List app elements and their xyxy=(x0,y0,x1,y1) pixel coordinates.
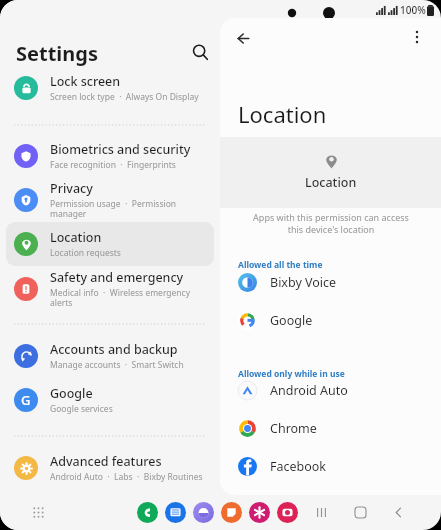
staticText: Apps with this permission can access thi… xyxy=(253,211,409,235)
staticText: Location xyxy=(305,174,357,191)
staticText: Safety and emergency xyxy=(50,269,184,286)
staticText: Location requests xyxy=(50,247,121,259)
button[interactable]: phone xyxy=(137,502,158,523)
staticText: Android Auto xyxy=(270,382,348,399)
button[interactable]: Accounts and backup xyxy=(6,334,214,378)
button[interactable]: Chrome xyxy=(220,412,441,444)
staticText: Face recognition · Fingerprints xyxy=(50,159,176,171)
button[interactable]: Back xyxy=(228,23,258,53)
staticText: Screen lock type · Always On Display xyxy=(50,91,199,103)
button[interactable]: Lock screen xyxy=(6,66,214,110)
staticText: Manage accounts · Smart Switch xyxy=(50,359,184,371)
staticText: Google xyxy=(50,385,93,402)
staticText: Medical info · Wireless emergency alerts xyxy=(50,287,214,309)
staticText: Google services xyxy=(50,403,113,415)
staticText: Accounts and backup xyxy=(50,341,178,358)
staticText: 100% xyxy=(400,3,426,17)
button[interactable]: Android Auto xyxy=(220,374,441,406)
button[interactable]: notes xyxy=(221,502,242,523)
staticText: Android Auto · Labs · Bixby Routines xyxy=(50,471,203,483)
button[interactable]: Home xyxy=(348,500,372,524)
button[interactable]: Privacy xyxy=(6,178,214,222)
staticText: Bixby Voice xyxy=(270,274,337,291)
staticText: G xyxy=(21,391,31,409)
staticText: Permission usage · Permission manager xyxy=(50,198,214,220)
staticText: Google xyxy=(270,312,313,329)
button[interactable]: Bixby Voice xyxy=(220,266,441,298)
staticText: Location xyxy=(50,229,102,246)
staticText: Biometrics and security xyxy=(50,141,191,158)
staticText: Lock screen xyxy=(50,73,121,90)
button[interactable]: msg xyxy=(165,502,186,523)
button[interactable]: G xyxy=(6,378,214,422)
button[interactable]: Google xyxy=(220,304,441,336)
button[interactable]: Search xyxy=(186,38,214,66)
button[interactable]: Facebook xyxy=(220,450,441,482)
staticText: Allowed all the time xyxy=(238,259,323,271)
staticText: Location xyxy=(238,99,327,129)
button[interactable]: Back xyxy=(386,500,410,524)
button[interactable]: cam xyxy=(277,502,298,523)
staticText: Privacy xyxy=(50,180,93,197)
staticText: Chrome xyxy=(270,420,317,437)
button[interactable]: flower xyxy=(249,502,270,523)
staticText: Settings xyxy=(16,40,98,67)
staticText: Advanced features xyxy=(50,453,162,470)
staticText: Facebook xyxy=(270,458,327,475)
button[interactable]: All apps xyxy=(26,500,50,524)
button[interactable]: bixby2 xyxy=(193,502,214,523)
button[interactable]: Recents xyxy=(309,500,333,524)
staticText: Allowed only while in use xyxy=(238,368,345,380)
button[interactable]: Safety and emergency xyxy=(6,267,214,311)
button[interactable]: More options xyxy=(403,23,431,51)
button[interactable]: Biometrics and security xyxy=(6,134,214,178)
button[interactable]: Advanced features xyxy=(6,446,214,490)
button[interactable]: Location xyxy=(6,222,214,266)
